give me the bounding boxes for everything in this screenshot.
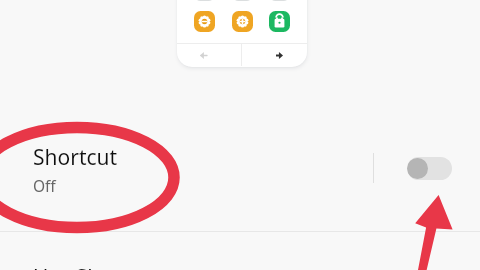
button[interactable]: Forward [242,44,307,67]
button[interactable] [194,0,215,1]
staticText: Shortcut [33,143,118,172]
button[interactable] [232,0,253,1]
button[interactable] [269,0,290,1]
other: Forward [276,52,283,59]
staticText: Use Shortcut to open [33,263,242,270]
button[interactable]: Lock [269,11,290,32]
button[interactable]: Brightness down [194,11,215,32]
button[interactable]: Back [177,44,241,67]
button[interactable]: Use Shortcut to open [0,233,480,270]
staticText: Off [33,175,56,196]
button[interactable]: Brightness up [232,11,253,32]
other: Back [200,52,207,59]
button[interactable]: Shortcut switch, off [407,157,452,180]
button[interactable]: Shortcut [0,136,480,232]
